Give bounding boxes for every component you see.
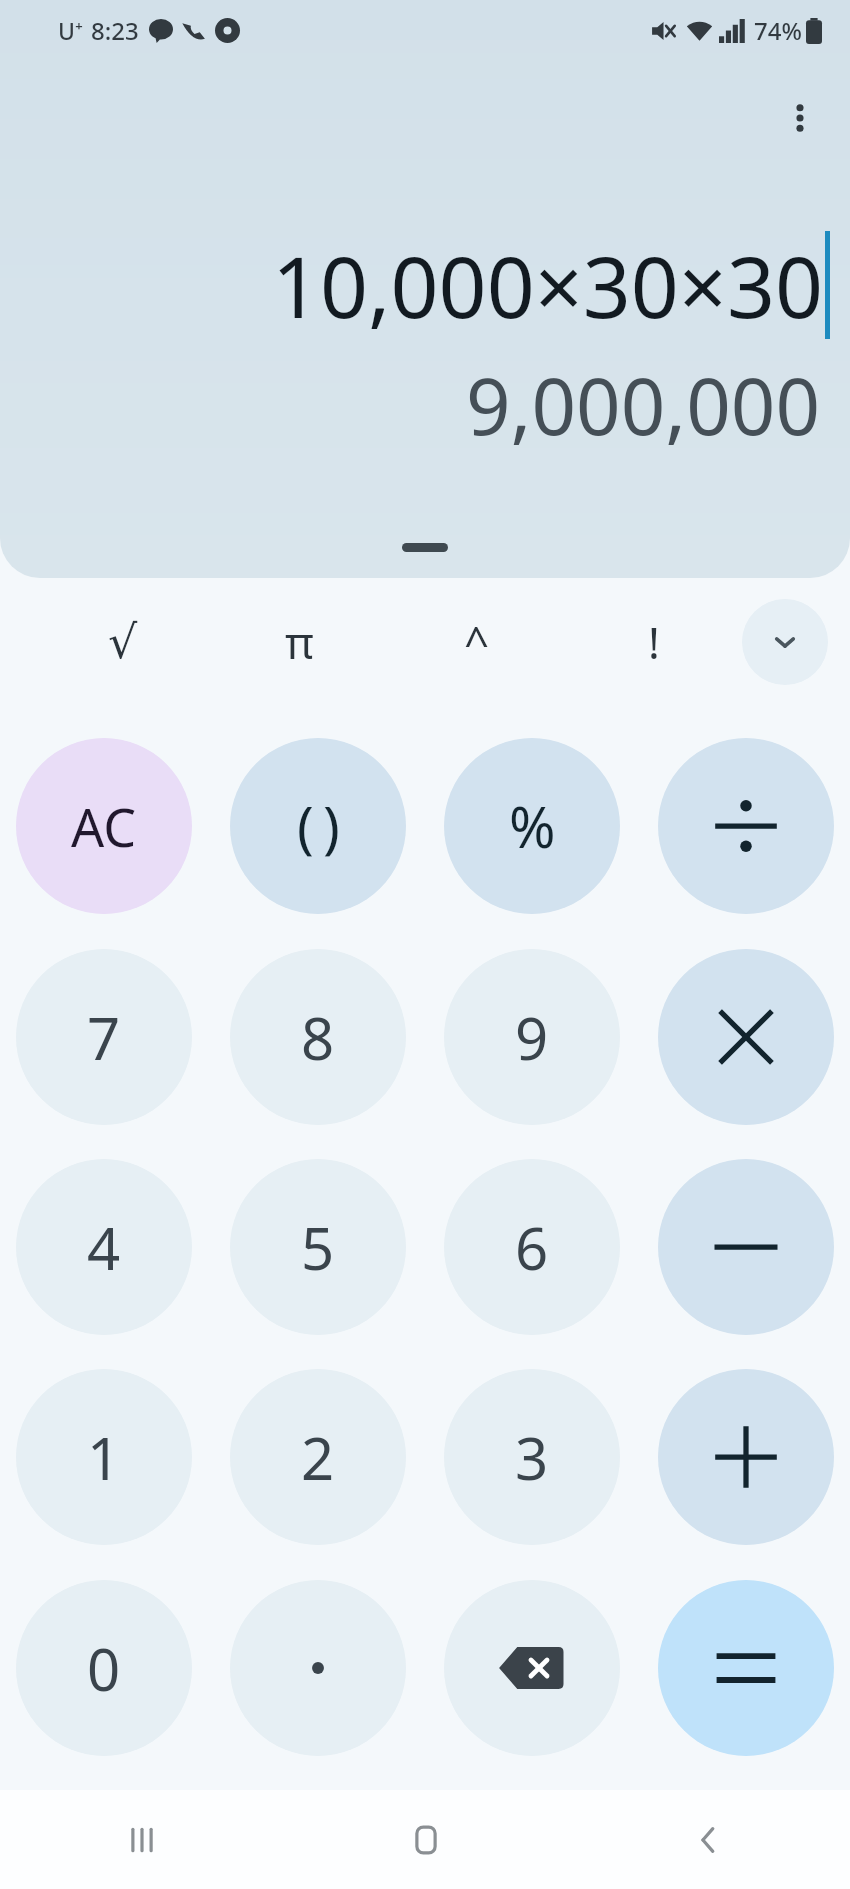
button[interactable]: Equals (658, 1580, 834, 1756)
button[interactable]: Decimal point (230, 1580, 406, 1756)
button[interactable]: Plus (658, 1369, 834, 1545)
button[interactable]: 0 (16, 1580, 192, 1756)
staticText: 4 (87, 1208, 121, 1287)
button[interactable]: 4 (16, 1159, 192, 1335)
staticText: % (509, 788, 556, 864)
button[interactable]: Minus (658, 1159, 834, 1335)
button[interactable]: % (444, 738, 620, 914)
staticText: √ (108, 615, 138, 669)
staticText: ! (648, 612, 660, 672)
button[interactable]: √ (34, 588, 211, 696)
button[interactable]: 8 (230, 949, 406, 1125)
staticText: π (285, 612, 314, 672)
button[interactable]: 7 (16, 949, 192, 1125)
button[interactable]: 6 (444, 1159, 620, 1335)
staticText: 1 (87, 1418, 121, 1497)
button[interactable]: Back (567, 1790, 850, 1889)
button[interactable]: 2 (230, 1369, 406, 1545)
button[interactable]: AC (16, 738, 192, 914)
staticText: 74% (754, 14, 802, 47)
staticText: ^ (464, 612, 490, 672)
staticText: 6 (515, 1208, 549, 1287)
staticText: 9,000,000 (465, 352, 820, 458)
button[interactable]: Backspace (444, 1580, 620, 1756)
button[interactable] (402, 543, 448, 552)
staticText: 8 (301, 998, 335, 1077)
staticText: 9 (515, 998, 549, 1077)
staticText: 10,000×30×30 (271, 228, 823, 342)
button[interactable]: ^ (388, 588, 565, 696)
staticText: U⁺ (58, 15, 83, 46)
button[interactable]: Home (284, 1790, 567, 1889)
button[interactable]: More options (762, 80, 838, 156)
button[interactable]: ! (565, 588, 742, 696)
staticText: 8:23 (91, 14, 139, 47)
button[interactable]: ( ) (230, 738, 406, 914)
button[interactable]: 3 (444, 1369, 620, 1545)
staticText: 3 (515, 1418, 549, 1497)
button[interactable]: π (211, 588, 388, 696)
button[interactable]: Expand (742, 599, 828, 685)
button[interactable]: 5 (230, 1159, 406, 1335)
button[interactable]: 1 (16, 1369, 192, 1545)
staticText: ( ) (297, 788, 340, 864)
staticText: 5 (301, 1208, 335, 1287)
button[interactable]: Multiply (658, 949, 834, 1125)
button[interactable]: Divide (658, 738, 834, 914)
staticText: 7 (87, 998, 121, 1077)
staticText: AC (71, 791, 137, 862)
button[interactable]: 9 (444, 949, 620, 1125)
button[interactable]: Recent apps (0, 1790, 284, 1889)
staticText: 0 (87, 1629, 121, 1708)
staticText: 2 (301, 1418, 335, 1497)
